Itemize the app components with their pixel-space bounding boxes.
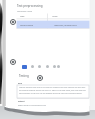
button[interactable]: User avatar [10, 59, 16, 65]
button[interactable]: Move up [46, 65, 49, 68]
staticText: Goal [18, 82, 23, 84]
staticText: Type [20, 15, 25, 18]
button[interactable]: User avatar [10, 19, 16, 25]
staticText: Measure precision and recall on the held… [19, 86, 86, 88]
button[interactable]: More options [57, 65, 60, 68]
button[interactable]: Delete [38, 65, 41, 68]
staticText: the baseline tokenizer. Record the macro… [19, 89, 86, 91]
staticText: failing samples so that they can be revi… [19, 92, 83, 94]
staticText: Text preprocessing [17, 4, 43, 8]
staticText: Notes [52, 15, 58, 18]
staticText: Report written to results/metrics.json [18, 104, 46, 106]
button[interactable]: User avatar [37, 75, 43, 81]
staticText: Convolution Nodes [17, 10, 33, 12]
button[interactable]: Move down [53, 65, 56, 68]
button[interactable]: Edit [31, 65, 34, 68]
staticText: Testing [19, 74, 29, 78]
staticText: text/normalize [20, 24, 33, 27]
button[interactable]: Run cell [22, 65, 27, 69]
staticText: Lowercase, remove punct. [54, 24, 78, 27]
button[interactable]: text/normalize [17, 21, 90, 29]
staticText: Output [18, 100, 25, 102]
button[interactable]: Measure precision and recall on the held… [17, 85, 89, 98]
